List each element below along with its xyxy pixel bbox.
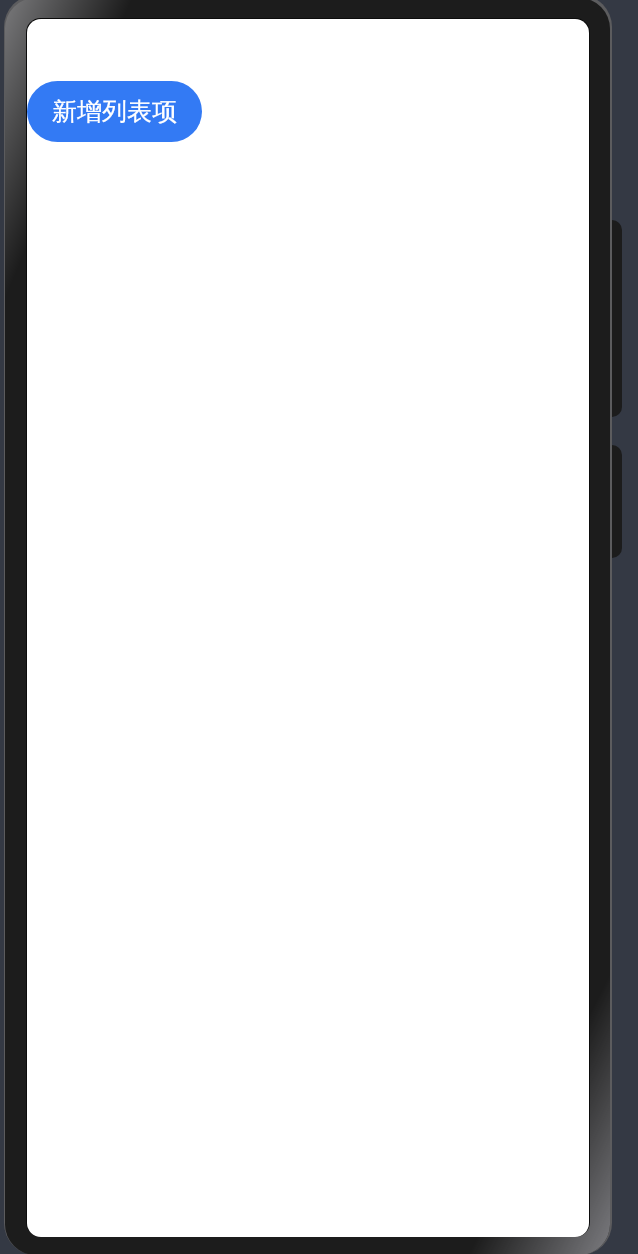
- staticText: 新增列表项: [52, 96, 177, 127]
- button[interactable]: 新增列表项: [27, 81, 202, 142]
